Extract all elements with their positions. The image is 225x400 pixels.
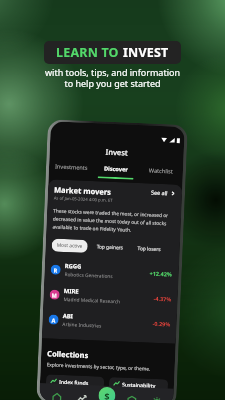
- staticText: Explore investments by sector, type, or …: [47, 361, 151, 373]
- staticText: Most active: [57, 242, 83, 250]
- button[interactable]: M: [49, 281, 172, 311]
- staticText: Collections: [47, 348, 89, 360]
- staticText: -0.29%: [152, 320, 171, 327]
- staticText: Investments: [55, 162, 88, 172]
- staticText: $: [104, 390, 111, 400]
- staticText: See all: [151, 189, 168, 196]
- staticText: Top gainers: [97, 243, 124, 251]
- staticText: Watchlist: [149, 166, 173, 175]
- staticText: Discover: [104, 165, 128, 174]
- staticText: -4.37%: [153, 295, 172, 302]
- button[interactable]: Top losers: [132, 242, 166, 256]
- staticText: Index funds: [59, 378, 89, 386]
- staticText: As of Jan-05-2024 4:00 p.m. ET: [54, 195, 113, 204]
- button[interactable]: R: [50, 256, 173, 286]
- staticText: R: [53, 267, 58, 274]
- staticText: INVEST: [123, 44, 169, 61]
- button[interactable]: Accounts: [123, 392, 140, 400]
- button[interactable]: A: [48, 306, 171, 336]
- staticText: LEARN TO: [56, 44, 123, 61]
- staticText: M: [51, 291, 58, 299]
- staticText: Robotics Generations: [64, 271, 114, 280]
- staticText: ABI: [63, 312, 74, 320]
- staticText: Sustainability: [122, 380, 156, 389]
- staticText: Market movers: [54, 184, 111, 197]
- button[interactable]: LEARN TO: [44, 41, 181, 64]
- button[interactable]: Watchlist: [138, 163, 183, 180]
- staticText: RGGG: [65, 262, 82, 271]
- button[interactable]: Top gainers: [91, 240, 129, 255]
- staticText: These stocks were traded the most, or in…: [52, 207, 175, 235]
- staticText: +12.42%: [149, 270, 173, 278]
- button[interactable]: Home: [48, 388, 65, 400]
- button[interactable]: Most active: [51, 238, 88, 253]
- staticText: Madrid Medical Research: [63, 296, 120, 305]
- staticText: with tools, tips, and information to hel…: [45, 66, 180, 90]
- button[interactable]: Sustainability: [108, 377, 168, 400]
- staticText: MIRE: [64, 287, 79, 296]
- button[interactable]: Planning: [73, 389, 90, 400]
- button[interactable]: Discover: [93, 161, 138, 180]
- button[interactable]: Trade: [98, 387, 116, 400]
- staticText: Invest: [105, 147, 129, 158]
- button[interactable]: Investments: [49, 159, 93, 176]
- staticText: Top losers: [137, 245, 161, 253]
- staticText: Arbine Industries: [62, 321, 102, 330]
- button[interactable]: See all: [151, 189, 176, 197]
- button[interactable]: Index funds: [45, 374, 104, 400]
- staticText: A: [51, 316, 56, 324]
- button[interactable]: Learn: [148, 393, 165, 400]
